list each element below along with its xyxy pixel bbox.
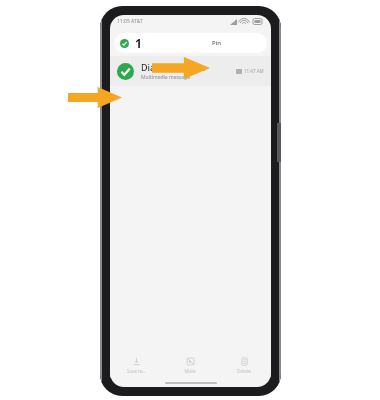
staticText: Delete (237, 368, 251, 374)
staticText: Multimedia message (141, 74, 190, 81)
button[interactable]: Diane Example (110, 56, 271, 86)
staticText: Save to... (127, 368, 146, 374)
staticText: 1 (135, 35, 142, 51)
button[interactable]: Pin (207, 37, 227, 49)
staticText: Diane Example (141, 61, 206, 73)
button[interactable]: Delete (217, 352, 271, 378)
staticText: 11:47 AM (244, 68, 264, 74)
staticText: Pin (212, 39, 222, 47)
staticText: Mute (184, 368, 196, 374)
staticText: 11:05 AT&T (117, 18, 143, 25)
button[interactable]: Select all (120, 39, 129, 48)
button[interactable]: Mute (163, 352, 217, 378)
button[interactable]: Save to... (110, 352, 163, 378)
